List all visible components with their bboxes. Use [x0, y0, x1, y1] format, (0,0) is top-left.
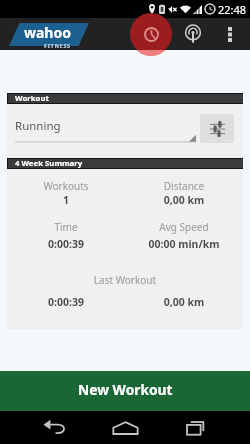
staticText: Last Workout	[7, 273, 243, 287]
button[interactable]: Back	[25, 411, 85, 444]
staticText: 0:00:39	[7, 295, 125, 309]
staticText: 00:00 min/km	[125, 237, 243, 251]
staticText: New Workout	[78, 380, 173, 399]
button[interactable]: New Workout	[0, 371, 250, 411]
staticText: FITNESS	[44, 42, 71, 49]
staticText: 1	[7, 193, 125, 207]
staticText: Time	[7, 220, 125, 234]
staticText: Distance	[125, 179, 243, 193]
staticText: 0,00 km	[125, 193, 243, 207]
button[interactable]: Home	[95, 411, 155, 444]
button[interactable]: Sensors	[177, 18, 209, 50]
staticText: Workout	[15, 93, 49, 104]
staticText: Running	[15, 118, 61, 134]
button[interactable]: Recent apps	[165, 411, 225, 444]
button[interactable]: Workout settings	[200, 114, 234, 143]
button[interactable]: More options	[219, 18, 241, 50]
staticText: Avg Speed	[125, 220, 243, 234]
button[interactable]: History	[130, 18, 172, 50]
staticText: Workouts	[7, 179, 125, 193]
button[interactable]: Running	[15, 113, 196, 143]
staticText: 22:48	[218, 2, 247, 17]
staticText: 0:00:39	[7, 237, 125, 251]
staticText: wahoo	[24, 23, 71, 42]
staticText: 4 Week Summary	[15, 158, 83, 169]
staticText: 0,00 km	[125, 295, 243, 309]
